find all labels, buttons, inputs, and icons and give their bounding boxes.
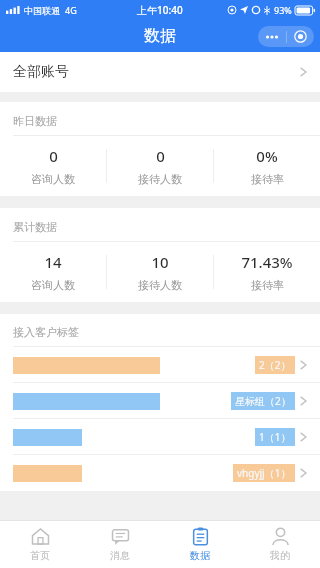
staticText: 0% <box>256 146 278 166</box>
button[interactable]: 消息 <box>80 521 160 568</box>
staticText: 累计数据 <box>13 220 57 234</box>
button[interactable]: Menu and close <box>258 26 314 47</box>
staticText: 4G <box>65 4 77 16</box>
button[interactable]: 数据 <box>160 521 240 568</box>
staticText: 星标组（2） <box>235 394 291 408</box>
staticText: 消息 <box>110 549 130 562</box>
staticText: 中国联通 <box>24 5 60 16</box>
staticText: 14 <box>44 252 62 272</box>
staticText: 0 <box>49 146 58 166</box>
staticText: vhgyjj（1） <box>237 466 291 480</box>
staticText: 咨询人数 <box>31 172 75 186</box>
staticText: 接入客户标签 <box>13 325 79 339</box>
button[interactable]: 星标组（2） <box>0 383 320 419</box>
button[interactable]: 我的 <box>240 521 320 568</box>
staticText: 咨询人数 <box>31 278 75 292</box>
button[interactable]: 首页 <box>0 521 80 568</box>
staticText: 接待率 <box>251 172 284 186</box>
staticText: 上午10:40 <box>137 3 183 17</box>
button[interactable]: vhgyjj（1） <box>0 455 320 491</box>
staticText: 接待率 <box>251 278 284 292</box>
staticText: 全部账号 <box>13 63 69 81</box>
staticText: 2（2） <box>259 358 291 372</box>
staticText: 首页 <box>30 549 50 562</box>
staticText: 1（1） <box>259 430 291 444</box>
staticText: 71.43% <box>241 252 293 272</box>
staticText: 数据 <box>144 26 176 46</box>
staticText: 接待人数 <box>138 172 182 186</box>
staticText: 数据 <box>190 549 210 562</box>
staticText: 0 <box>156 146 165 166</box>
button[interactable]: 全部账号 <box>0 52 320 92</box>
staticText: 昨日数据 <box>13 114 57 128</box>
staticText: 接待人数 <box>138 278 182 292</box>
staticText: 我的 <box>270 549 290 562</box>
staticText: 93% <box>274 4 292 16</box>
staticText: 10 <box>151 252 169 272</box>
button[interactable]: 1（1） <box>0 419 320 455</box>
button[interactable]: 2（2） <box>0 347 320 383</box>
